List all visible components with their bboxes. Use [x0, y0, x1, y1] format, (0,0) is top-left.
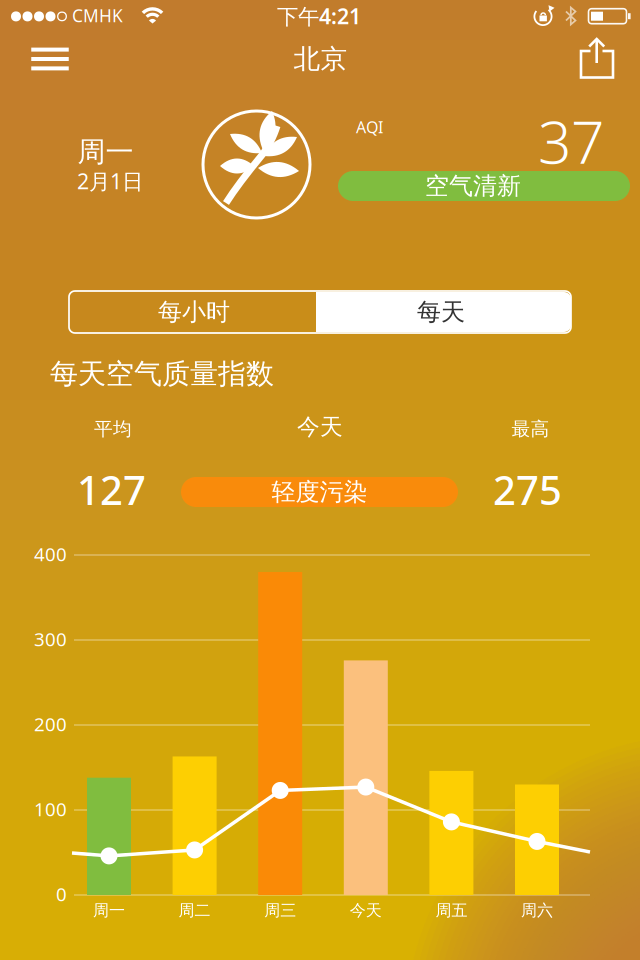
staticText: 275 [493, 463, 562, 516]
staticText: 2月1日 [77, 167, 143, 195]
staticText: 周二 [179, 901, 211, 920]
staticText: 200 [34, 712, 67, 736]
staticText: CMHK [72, 4, 123, 27]
staticText: 0 [56, 882, 67, 906]
staticText: 37 [538, 102, 604, 180]
staticText: AQI [356, 116, 383, 138]
staticText: 周一 [93, 901, 125, 920]
staticText: 每天 [417, 297, 465, 327]
staticText: 今天 [350, 901, 382, 920]
staticText: 轻度污染 [271, 477, 367, 507]
staticText: 下午4:21 [277, 2, 361, 30]
staticText: 今天 [297, 413, 343, 441]
staticText: 平均 [94, 417, 132, 440]
button[interactable]: 每小时 [70, 291, 317, 333]
button[interactable]: Share [569, 32, 625, 84]
staticText: 每天空气质量指数 [50, 357, 274, 391]
staticText: 100 [34, 797, 67, 821]
staticText: 北京 [293, 43, 347, 75]
button[interactable]: Menu [20, 35, 80, 83]
staticText: 400 [34, 542, 67, 566]
staticText: 周三 [264, 901, 296, 920]
staticText: 周一 [77, 135, 133, 169]
staticText: 周五 [435, 901, 467, 920]
staticText: 300 [34, 627, 67, 651]
staticText: 周六 [521, 901, 553, 920]
button[interactable]: 每天 [317, 291, 564, 333]
staticText: 最高 [511, 417, 549, 440]
staticText: 127 [77, 463, 146, 516]
staticText: 每小时 [158, 297, 230, 327]
staticText: 空气清新 [425, 171, 521, 201]
